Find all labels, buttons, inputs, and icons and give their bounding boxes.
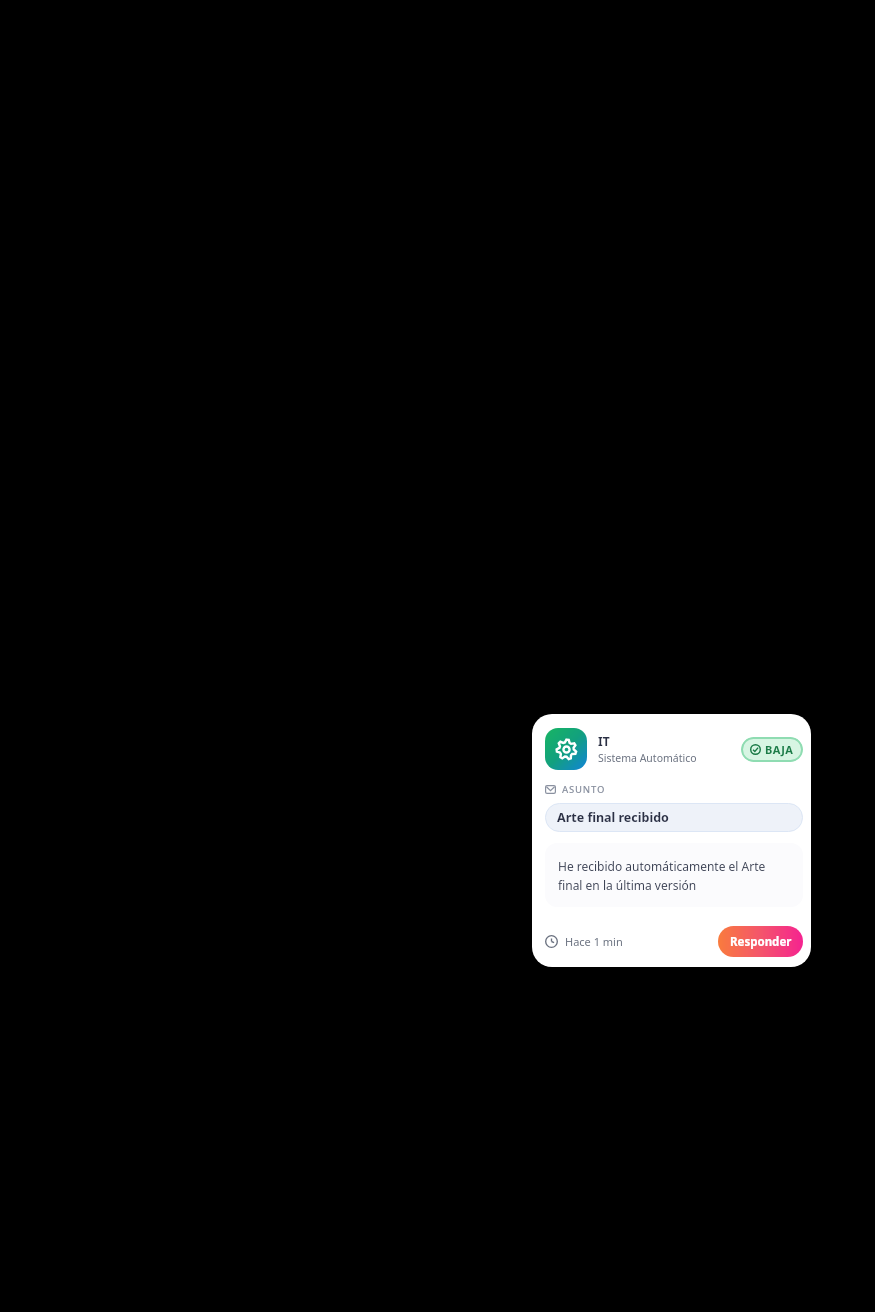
staticText: He recibido automáticamente el Arte fina… (558, 858, 790, 893)
staticText: Responder (730, 934, 792, 950)
button[interactable]: Settings avatar (545, 728, 587, 770)
staticText: Hace 1 min (565, 934, 623, 949)
staticText: BAJA (765, 742, 794, 757)
staticText: IT (598, 733, 610, 749)
button[interactable]: Arte final recibido (545, 803, 803, 832)
button[interactable]: Responder (718, 926, 803, 957)
staticText: ASUNTO (562, 783, 606, 796)
staticText: Arte final recibido (557, 809, 669, 826)
button[interactable]: BAJA (741, 737, 803, 762)
staticText: Sistema Automático (598, 751, 697, 765)
